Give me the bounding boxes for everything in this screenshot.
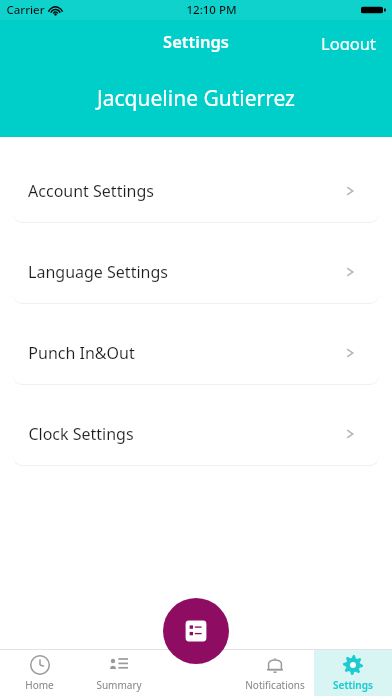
button[interactable]: Notifications xyxy=(236,650,314,696)
button[interactable]: Logout xyxy=(305,28,392,54)
button[interactable]: Clock Settings xyxy=(13,403,379,465)
button[interactable]: Settings xyxy=(314,650,392,696)
staticText: Settings xyxy=(333,678,373,692)
staticText: Language Settings xyxy=(28,261,168,283)
staticText: 12:10 PM xyxy=(186,2,237,18)
button[interactable]: Punch In&Out xyxy=(13,322,379,384)
staticText: Logout xyxy=(321,32,376,50)
button[interactable]: Summary xyxy=(79,650,158,696)
staticText: Carrier xyxy=(6,2,45,18)
staticText: Clock Settings xyxy=(28,423,134,445)
button[interactable]: Tasks xyxy=(163,598,229,664)
staticText: Jacqueline Gutierrez xyxy=(97,84,295,113)
button[interactable]: Account Settings xyxy=(13,160,379,222)
staticText: Settings xyxy=(163,30,229,52)
staticText: Account Settings xyxy=(28,180,154,202)
staticText: Notifications xyxy=(245,678,305,692)
staticText: Home xyxy=(25,678,54,692)
staticText: Summary xyxy=(96,678,142,692)
staticText: Punch In&Out xyxy=(28,342,135,364)
button[interactable]: Language Settings xyxy=(13,241,379,303)
button[interactable]: Home xyxy=(0,650,79,696)
button[interactable]: Settings xyxy=(157,28,235,54)
